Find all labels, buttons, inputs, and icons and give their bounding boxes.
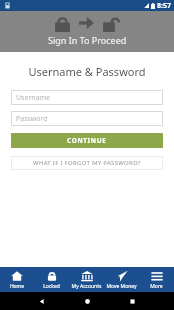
staticText: Username	[16, 93, 51, 103]
other: Back	[38, 298, 45, 305]
button[interactable]: Password	[11, 111, 163, 126]
button[interactable]: CONTINUE	[11, 133, 163, 148]
staticText: Locked	[34, 283, 69, 290]
button[interactable]: Locked	[34, 267, 69, 292]
button[interactable]: My Accounts	[69, 267, 104, 292]
staticText: Password	[16, 114, 48, 124]
staticText: Sign In To Proceed	[48, 34, 127, 46]
button[interactable]: Username	[11, 90, 163, 105]
other: Recents	[129, 298, 136, 305]
other: Home	[84, 298, 91, 305]
button[interactable]: Move Money	[104, 267, 139, 292]
staticText: CONTINUE	[67, 136, 107, 145]
staticText: Home	[0, 283, 34, 290]
staticText: More	[139, 283, 174, 290]
staticText: 8:57	[157, 1, 171, 11]
button[interactable]: More	[139, 267, 174, 292]
staticText: Move Money	[104, 283, 139, 290]
button[interactable]: Home	[0, 267, 34, 292]
button[interactable]: WHAT IF I FORGOT MY PASSWORD?	[11, 156, 163, 170]
staticText: My Accounts	[69, 283, 104, 290]
staticText: Username & Password	[0, 64, 174, 79]
staticText: WHAT IF I FORGOT MY PASSWORD?	[33, 159, 141, 167]
